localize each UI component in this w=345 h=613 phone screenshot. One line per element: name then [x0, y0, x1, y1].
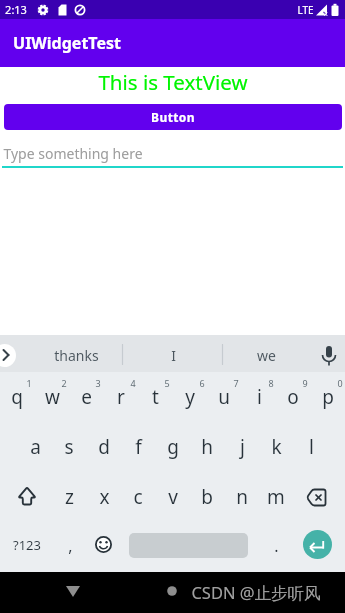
- staticText: m: [267, 484, 285, 510]
- button[interactable]: [302, 481, 334, 513]
- staticText: .: [274, 535, 279, 557]
- staticText: c: [133, 484, 143, 510]
- button[interactable]: m: [259, 477, 293, 517]
- staticText: u: [218, 384, 230, 410]
- staticText: o: [287, 384, 299, 410]
- staticText: s: [64, 434, 74, 460]
- button[interactable]: w: [35, 377, 69, 417]
- button[interactable]: .: [259, 526, 293, 566]
- button[interactable]: ,: [53, 526, 87, 566]
- button[interactable]: a: [18, 427, 52, 467]
- staticText: x: [99, 484, 110, 510]
- button[interactable]: v: [156, 477, 190, 517]
- staticText: z: [65, 484, 74, 510]
- staticText: n: [236, 484, 248, 510]
- button[interactable]: f: [121, 427, 155, 467]
- staticText: p: [322, 384, 334, 410]
- button[interactable]: c: [121, 477, 155, 517]
- button[interactable]: [88, 529, 119, 560]
- staticText: a: [30, 434, 41, 460]
- staticText: t: [152, 384, 159, 410]
- button[interactable]: [50, 572, 110, 613]
- staticText: k: [271, 434, 282, 460]
- button[interactable]: [10, 480, 40, 513]
- button[interactable]: Button: [4, 104, 342, 130]
- staticText: 2:13: [5, 2, 27, 17]
- button[interactable]: ?123: [5, 530, 49, 560]
- button[interactable]: y: [173, 377, 207, 417]
- staticText: 8: [268, 377, 274, 389]
- staticText: d: [98, 434, 110, 460]
- staticText: 2: [61, 377, 67, 389]
- button[interactable]: e: [69, 377, 103, 417]
- button[interactable]: t: [138, 377, 172, 417]
- staticText: e: [81, 384, 92, 410]
- button[interactable]: I: [138, 344, 208, 366]
- button[interactable]: Type something here: [3, 143, 223, 164]
- staticText: 1: [26, 377, 32, 389]
- staticText: Button: [151, 109, 195, 125]
- staticText: thanks: [54, 346, 99, 365]
- staticText: 6: [199, 377, 205, 389]
- button[interactable]: d: [87, 427, 121, 467]
- staticText: h: [201, 434, 213, 460]
- button[interactable]: b: [190, 477, 224, 517]
- button[interactable]: u: [207, 377, 241, 417]
- staticText: l: [309, 434, 314, 460]
- button[interactable]: p: [311, 377, 345, 417]
- staticText: j: [240, 434, 245, 460]
- button[interactable]: h: [190, 427, 224, 467]
- staticText: 0: [337, 377, 343, 389]
- staticText: g: [167, 434, 179, 460]
- button[interactable]: i: [242, 377, 276, 417]
- button[interactable]: [0, 344, 16, 367]
- staticText: i: [257, 384, 262, 410]
- staticText: q: [11, 384, 23, 410]
- button[interactable]: z: [52, 477, 86, 517]
- staticText: b: [201, 484, 213, 510]
- staticText: r: [117, 384, 125, 410]
- staticText: 7: [233, 377, 239, 389]
- button[interactable]: we: [231, 344, 301, 366]
- button[interactable]: [245, 572, 305, 613]
- staticText: 5: [164, 377, 170, 389]
- staticText: we: [257, 346, 276, 365]
- staticText: f: [135, 434, 142, 460]
- button[interactable]: j: [225, 427, 259, 467]
- staticText: UIWidgetTest: [13, 32, 121, 54]
- button[interactable]: l: [294, 427, 328, 467]
- button[interactable]: n: [225, 477, 259, 517]
- button[interactable]: o: [276, 377, 310, 417]
- button[interactable]: r: [104, 377, 138, 417]
- staticText: ?123: [13, 536, 41, 554]
- button[interactable]: [303, 530, 332, 559]
- staticText: I: [171, 346, 176, 365]
- staticText: ,: [68, 535, 73, 557]
- button[interactable]: thanks: [41, 344, 111, 366]
- staticText: w: [45, 384, 60, 410]
- staticText: 4: [130, 377, 136, 389]
- staticText: 3: [95, 377, 101, 389]
- staticText: LTE: [297, 3, 314, 17]
- staticText: y: [185, 384, 195, 410]
- staticText: This is TextView: [98, 68, 248, 96]
- button[interactable]: q: [0, 377, 34, 417]
- button[interactable]: s: [52, 427, 86, 467]
- button[interactable]: g: [156, 427, 190, 467]
- staticText: 9: [302, 377, 308, 389]
- staticText: Type something here: [3, 144, 143, 163]
- button[interactable]: [145, 572, 205, 613]
- staticText: v: [168, 484, 178, 510]
- button[interactable]: x: [87, 477, 121, 517]
- button[interactable]: k: [259, 427, 293, 467]
- staticText: CSDN @止步听风: [191, 581, 321, 604]
